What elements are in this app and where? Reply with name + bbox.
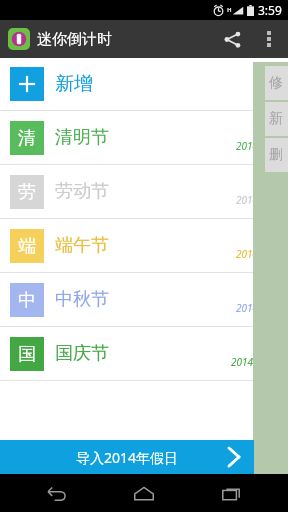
button[interactable]: 劳: [0, 165, 288, 218]
staticText: 删: [269, 146, 283, 164]
staticText: 端午节: [55, 234, 109, 257]
button[interactable]: 删: [265, 138, 288, 172]
button[interactable]: 清: [0, 111, 288, 164]
staticText: 2014-5-1: [236, 193, 276, 207]
button[interactable]: 修: [265, 66, 288, 100]
staticText: 34: [263, 123, 276, 138]
staticText: 2014-6-2: [236, 247, 276, 261]
staticText: 2014-10-1: [231, 355, 276, 369]
button[interactable]: 中: [0, 273, 288, 326]
staticText: 新: [269, 110, 283, 128]
button[interactable]: 新: [265, 102, 288, 136]
staticText: 国庆节: [55, 342, 109, 365]
button[interactable]: 国: [0, 327, 288, 380]
button[interactable]: Share: [212, 20, 252, 58]
staticText: 迷你倒计时: [37, 30, 112, 49]
button[interactable]: Recent apps: [201, 474, 263, 512]
staticText: 2014-4-5: [236, 139, 276, 153]
staticText: 修: [269, 74, 283, 92]
staticText: 清: [18, 127, 36, 150]
staticText: 导入2014年假日: [76, 448, 179, 467]
button[interactable]: More options: [252, 22, 286, 56]
staticText: 劳: [18, 181, 36, 204]
button[interactable]: Home: [113, 474, 175, 512]
staticText: 中秋节: [55, 288, 109, 311]
staticText: 3:59: [258, 2, 282, 18]
button[interactable]: 新增: [0, 58, 288, 110]
button[interactable]: Back: [26, 474, 88, 512]
staticText: 劳动节: [55, 180, 109, 203]
button[interactable]: 导入2014年假日: [0, 440, 254, 474]
staticText: 端: [18, 235, 36, 258]
staticText: 中: [18, 289, 36, 312]
staticText: 清明节: [55, 126, 109, 149]
button[interactable]: 端: [0, 219, 288, 272]
staticText: 新增: [55, 72, 93, 96]
staticText: >>>: [260, 92, 276, 104]
staticText: 2014-9-8: [236, 301, 276, 315]
staticText: 国: [18, 343, 36, 366]
staticText: H: [227, 6, 232, 14]
